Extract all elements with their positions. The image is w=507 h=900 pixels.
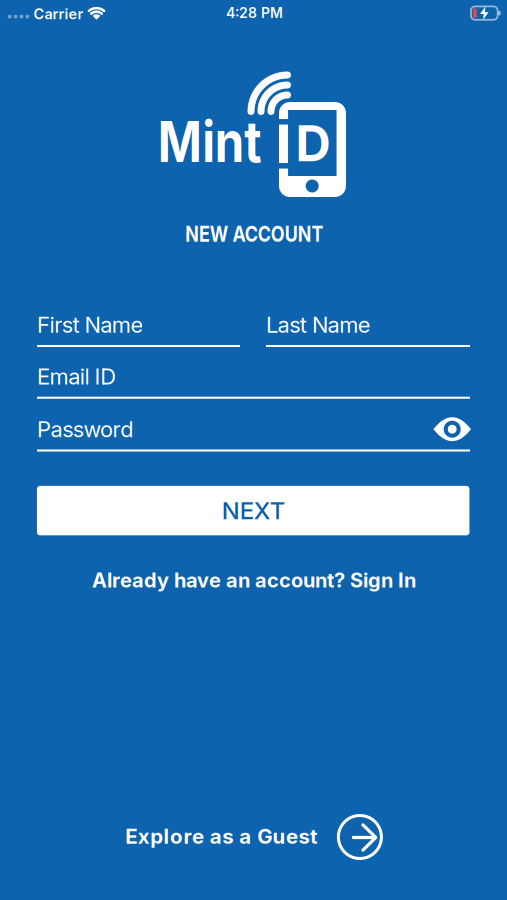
button[interactable]: Email ID <box>37 363 470 399</box>
staticText: Password <box>37 416 133 442</box>
staticText: Last Name <box>266 311 371 338</box>
staticText: Already have an account? Sign In <box>92 568 416 592</box>
staticText: First Name <box>37 311 143 338</box>
staticText: Mint <box>148 107 272 176</box>
staticText: 4:28 PM <box>226 4 283 21</box>
staticText: Carrier <box>33 5 83 23</box>
staticText: D <box>295 114 330 173</box>
button[interactable]: Explore as a Guest <box>125 824 318 849</box>
button[interactable]: NEXT <box>37 486 469 535</box>
staticText: NEW ACCOUNT <box>169 220 339 247</box>
button[interactable]: Already have an account? Sign In <box>92 568 416 592</box>
staticText: Explore as a Guest <box>125 824 318 849</box>
button[interactable]: Show password <box>432 415 472 443</box>
staticText: Email ID <box>37 363 116 390</box>
staticText: NEXT <box>222 496 285 525</box>
button[interactable]: Explore as a Guest <box>338 815 381 858</box>
button[interactable]: Last Name <box>266 311 470 347</box>
button[interactable]: First Name <box>37 311 240 347</box>
button[interactable]: Password <box>37 416 470 451</box>
